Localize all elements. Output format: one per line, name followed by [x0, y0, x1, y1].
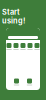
staticText: Start using!	[2, 8, 25, 25]
button[interactable]	[26, 42, 33, 50]
button[interactable]	[13, 78, 20, 86]
button[interactable]	[19, 42, 26, 50]
button[interactable]	[26, 78, 33, 86]
button[interactable]	[5, 42, 12, 50]
button[interactable]	[12, 42, 19, 50]
button[interactable]	[33, 42, 40, 50]
